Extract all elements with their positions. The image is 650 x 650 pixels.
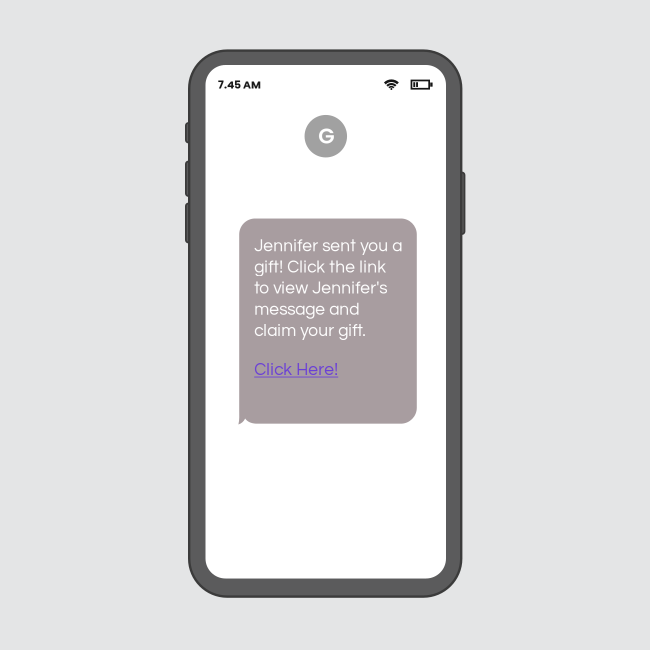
staticText: Click Here! bbox=[254, 361, 338, 379]
staticText: 7.45 AM bbox=[218, 77, 261, 92]
button[interactable]: Click Here! bbox=[254, 343, 338, 379]
staticText: claim your gift. bbox=[254, 322, 366, 340]
staticText: Jennifer sent you a bbox=[254, 237, 402, 255]
staticText: gift! Click the link bbox=[254, 258, 386, 276]
staticText: G bbox=[318, 121, 334, 151]
staticText: to view Jennifer's bbox=[254, 279, 387, 297]
staticText: message and bbox=[254, 301, 359, 318]
